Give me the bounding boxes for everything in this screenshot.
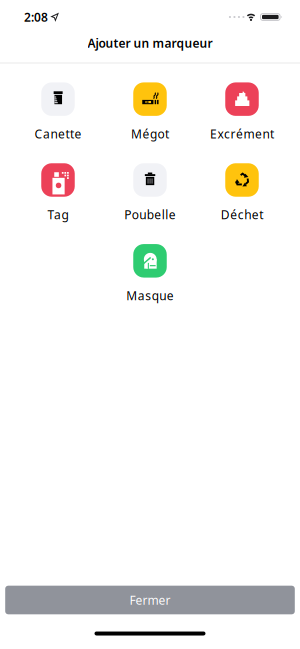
staticText: Ajouter un marqueur — [87, 35, 212, 51]
staticText: Poubelle — [124, 207, 176, 223]
button[interactable]: Masque — [104, 244, 196, 303]
button[interactable]: Poubelle — [104, 163, 196, 223]
button[interactable]: Canette — [12, 82, 104, 142]
staticText: Canette — [34, 126, 81, 142]
staticText: Masque — [126, 288, 174, 303]
staticText: Excrément — [210, 126, 274, 142]
button[interactable]: Excrément — [196, 82, 288, 142]
button[interactable]: Tag — [12, 163, 104, 223]
button[interactable]: Fermer — [5, 586, 295, 614]
staticText: Tag — [47, 207, 68, 223]
button[interactable]: Mégot — [104, 82, 196, 142]
staticText: 2:08 — [24, 9, 48, 25]
button[interactable]: Déchet — [196, 163, 288, 223]
staticText: Déchet — [221, 207, 263, 223]
staticText: Fermer — [129, 592, 170, 608]
staticText: Mégot — [131, 126, 169, 142]
